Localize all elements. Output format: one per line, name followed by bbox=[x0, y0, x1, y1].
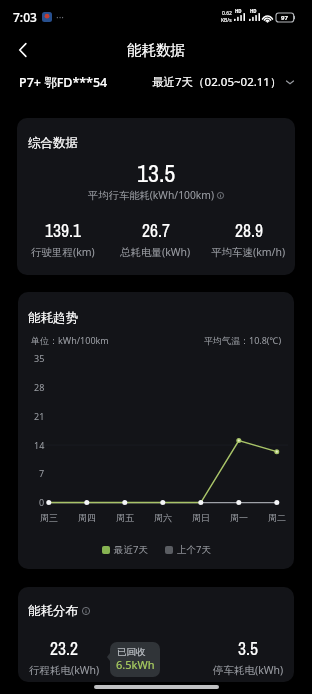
button[interactable]: 最近7天（02.05~02.11） bbox=[152, 74, 295, 90]
staticText: 最近7天（02.05~02.11） bbox=[152, 74, 282, 90]
staticText: KB/s bbox=[221, 17, 232, 24]
staticText: 28 bbox=[34, 381, 45, 393]
staticText: 周日 bbox=[192, 512, 210, 523]
staticText: 7:03 bbox=[13, 9, 37, 25]
staticText: 21 bbox=[34, 410, 45, 422]
staticText: 97 bbox=[281, 14, 288, 22]
staticText: 能耗数据 bbox=[127, 41, 185, 59]
staticText: 能耗趋势 bbox=[28, 310, 78, 326]
staticText: 周五 bbox=[116, 512, 134, 523]
staticText: 平均气温：10.8(℃) bbox=[204, 334, 282, 346]
staticText: 综合数据 bbox=[28, 135, 78, 151]
staticText: 周三 bbox=[40, 512, 58, 523]
staticText: 行程耗电(kWh) bbox=[29, 663, 100, 677]
staticText: 周二 bbox=[268, 512, 286, 523]
staticText: 周一 bbox=[230, 512, 248, 523]
staticText: 平均车速(km/h) bbox=[211, 245, 286, 259]
staticText: 周六 bbox=[154, 512, 172, 523]
staticText: 上个7天 bbox=[177, 543, 211, 556]
staticText: 停车耗电(kWh) bbox=[213, 663, 284, 677]
staticText: 最近7天 bbox=[114, 543, 148, 556]
staticText: 已回收 bbox=[117, 646, 146, 658]
staticText: 7 bbox=[39, 467, 45, 479]
staticText: HD bbox=[235, 8, 242, 14]
staticText: 35 bbox=[34, 352, 45, 364]
staticText: 能耗分布 bbox=[28, 603, 78, 619]
staticText: HD bbox=[250, 8, 257, 14]
staticText: 23.2 bbox=[50, 637, 78, 661]
staticText: 3.5 bbox=[238, 637, 258, 661]
staticText: 6.5kWh bbox=[116, 657, 155, 672]
staticText: 28.9 bbox=[235, 219, 263, 243]
staticText: 周四 bbox=[78, 512, 96, 523]
staticText: ··· bbox=[56, 10, 65, 24]
staticText: 13.5 bbox=[137, 157, 176, 189]
staticText: 26.7 bbox=[142, 219, 170, 243]
staticText: 14 bbox=[34, 439, 45, 451]
staticText: 总耗电量(kWh) bbox=[120, 245, 191, 259]
staticText: 0 bbox=[39, 496, 45, 508]
button[interactable]: P7+ 鄂FD***54 bbox=[19, 74, 108, 91]
staticText: 139.1 bbox=[45, 219, 81, 243]
staticText: P7+ 鄂FD***54 bbox=[19, 74, 108, 91]
staticText: 平均行车能耗(kWh/100km) bbox=[88, 188, 215, 202]
staticText: 0.62 bbox=[222, 10, 232, 17]
staticText: 单位：kWh/100km bbox=[31, 334, 109, 346]
button[interactable]: Back bbox=[6, 34, 40, 66]
staticText: 行驶里程(km) bbox=[31, 245, 95, 259]
